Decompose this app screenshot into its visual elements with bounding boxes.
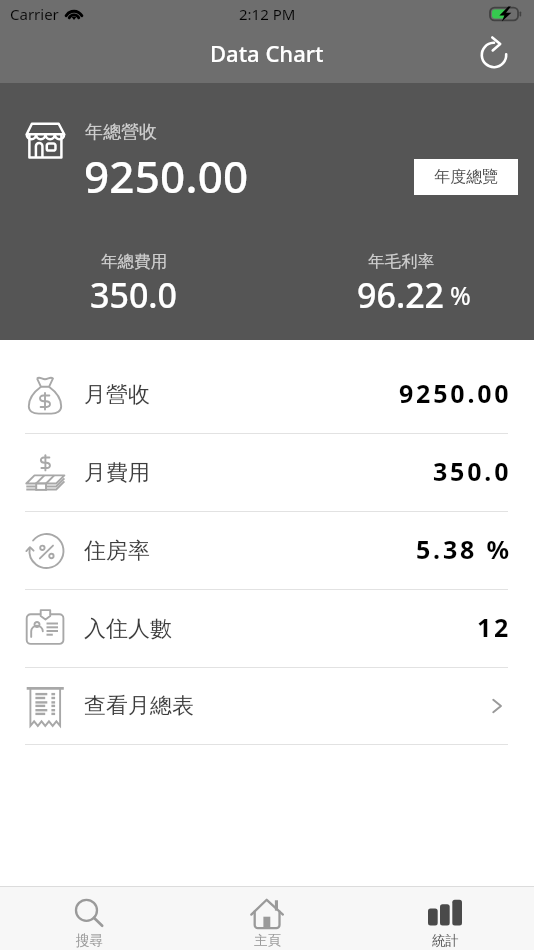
staticText: 年總營收 xyxy=(85,121,157,144)
staticText: 主頁 xyxy=(254,932,281,949)
staticText: Data Chart xyxy=(210,38,324,68)
staticText: 2:12 PM xyxy=(239,4,296,24)
staticText: 5.38 % xyxy=(416,532,512,566)
button[interactable]: 搜尋 xyxy=(0,887,178,950)
staticText: 9250.00 xyxy=(84,146,249,206)
staticText: 350.0 xyxy=(433,454,512,488)
button[interactable]: 查看月總表 xyxy=(0,668,534,744)
button[interactable]: 月費用 xyxy=(0,434,534,511)
staticText: 統計 xyxy=(432,932,459,949)
staticText: 96.22 xyxy=(357,272,445,318)
button[interactable]: 月營收 xyxy=(0,357,534,433)
button[interactable]: 年度總覽 xyxy=(414,159,518,195)
staticText: 9250.00 xyxy=(399,376,512,410)
staticText: 住房率 xyxy=(84,537,150,565)
button[interactable]: 住房率 xyxy=(0,512,534,589)
button[interactable]: 主頁 xyxy=(178,887,356,950)
staticText: Carrier xyxy=(10,4,59,24)
staticText: 350.0 xyxy=(90,272,178,318)
staticText: 年度總覽 xyxy=(434,167,498,187)
staticText: 入住人數 xyxy=(84,615,172,643)
button[interactable]: 統計 xyxy=(356,887,534,950)
staticText: 年總費用 xyxy=(101,251,167,272)
staticText: 月營收 xyxy=(84,381,150,409)
staticText: 年毛利率 xyxy=(368,251,434,272)
button[interactable]: Refresh xyxy=(471,30,517,83)
staticText: 查看月總表 xyxy=(84,692,194,720)
staticText: 月費用 xyxy=(84,459,150,487)
staticText: % xyxy=(450,278,471,312)
staticText: 搜尋 xyxy=(76,932,103,949)
staticText: 12 xyxy=(477,610,512,644)
button[interactable]: 入住人數 xyxy=(0,590,534,667)
